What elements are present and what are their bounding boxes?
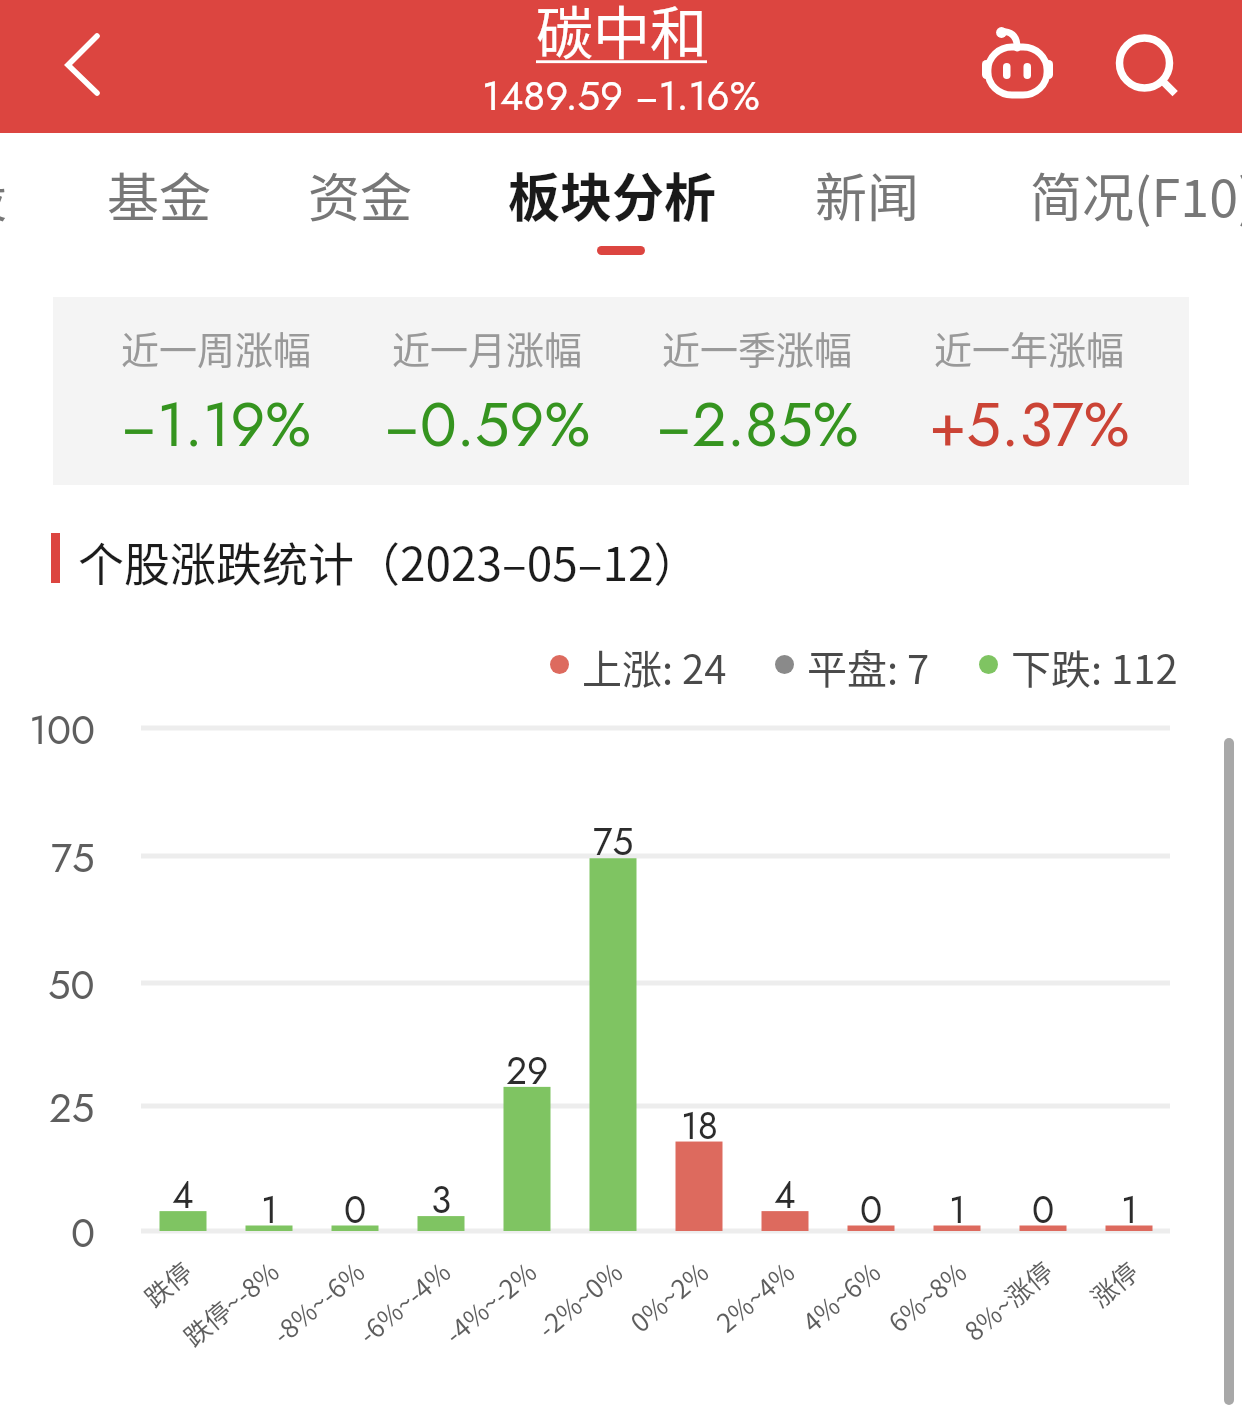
- button[interactable]: 股: [0, 133, 32, 251]
- staticText: 1: [949, 1183, 966, 1236]
- staticText: 跌停: [135, 1252, 200, 1315]
- button[interactable]: 近一月涨幅: [347, 320, 627, 469]
- staticText: 板块分析: [508, 157, 717, 232]
- staticText: 股: [0, 157, 8, 232]
- staticText: 资金: [308, 157, 413, 232]
- staticText: 75: [51, 829, 95, 887]
- staticText: 1: [1121, 1183, 1138, 1236]
- staticText: 1: [261, 1183, 278, 1236]
- staticText: −1.19%: [121, 381, 312, 469]
- staticText: −0.59%: [384, 381, 591, 469]
- staticText: 29: [506, 1044, 549, 1097]
- staticText: 25: [49, 1079, 95, 1137]
- button[interactable]: 新闻: [791, 133, 944, 251]
- staticText: 涨停: [1081, 1252, 1146, 1315]
- staticText: 个股涨跌统计（2023–05–12）: [78, 528, 700, 595]
- staticText: +5.37%: [929, 381, 1130, 469]
- staticText: 0: [860, 1183, 883, 1236]
- button[interactable]: 资金: [284, 133, 437, 251]
- staticText: 50: [48, 956, 95, 1014]
- button[interactable]: 上涨: 24: [550, 638, 727, 690]
- staticText: 0: [71, 1204, 95, 1262]
- button[interactable]: 平盘: 7: [775, 638, 930, 690]
- staticText: 4: [172, 1168, 194, 1221]
- staticText: 18: [681, 1099, 718, 1152]
- staticText: -6%~-4%: [350, 1252, 458, 1352]
- staticText: 0: [1032, 1183, 1055, 1236]
- staticText: 6%~8%: [879, 1252, 974, 1340]
- button[interactable]: 近一季涨幅: [617, 320, 897, 469]
- staticText: 4: [774, 1168, 796, 1221]
- staticText: 下跌: 112: [1011, 638, 1178, 690]
- staticText: 碳中和: [536, 0, 707, 71]
- staticText: 3: [431, 1173, 452, 1226]
- staticText: 新闻: [815, 157, 920, 232]
- staticText: 0%~2%: [621, 1252, 716, 1340]
- staticText: -8%~-6%: [264, 1252, 372, 1352]
- staticText: 跌停~-8%: [175, 1252, 286, 1354]
- staticText: 4%~6%: [793, 1252, 888, 1340]
- staticText: -2%~0%: [529, 1252, 630, 1346]
- button[interactable]: 下跌: 112: [979, 638, 1178, 690]
- staticText: 近一年涨幅: [934, 320, 1125, 375]
- button[interactable]: 基金: [83, 133, 236, 251]
- button[interactable]: 简况(F10): [1006, 133, 1242, 251]
- staticText: 0: [344, 1183, 367, 1236]
- button[interactable]: AI assistant: [975, 23, 1055, 103]
- staticText: 简况(F10): [1030, 157, 1242, 232]
- button[interactable]: 近一周涨幅: [76, 320, 356, 469]
- staticText: 8%~涨停: [956, 1252, 1060, 1349]
- staticText: 上涨: 24: [582, 638, 727, 690]
- staticText: 平盘: 7: [807, 638, 930, 690]
- staticText: -4%~-2%: [436, 1252, 544, 1352]
- staticText: 近一周涨幅: [121, 320, 312, 375]
- staticText: 2%~4%: [707, 1252, 802, 1340]
- staticText: 100: [29, 701, 95, 759]
- staticText: 基金: [107, 157, 212, 232]
- button[interactable]: Back: [44, 20, 132, 108]
- staticText: 1489.59 −1.16%: [482, 67, 760, 125]
- button[interactable]: 板块分析: [484, 133, 741, 251]
- staticText: 75: [593, 815, 634, 868]
- staticText: 近一月涨幅: [392, 320, 583, 375]
- button[interactable]: 近一年涨幅: [889, 320, 1169, 469]
- button[interactable]: Search: [1105, 23, 1185, 103]
- staticText: −2.85%: [656, 381, 859, 469]
- staticText: 近一季涨幅: [662, 320, 853, 375]
